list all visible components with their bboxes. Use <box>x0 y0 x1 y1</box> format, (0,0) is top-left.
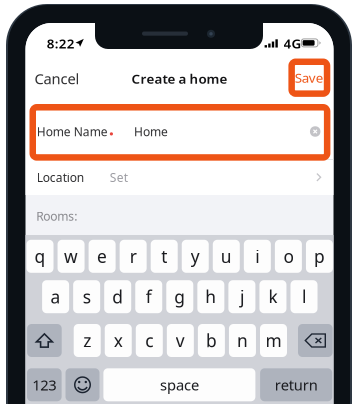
staticText: k <box>268 285 277 308</box>
staticText: j <box>240 285 244 308</box>
button[interactable]: Delete <box>298 324 333 357</box>
staticText: x <box>114 329 123 352</box>
staticText: a <box>51 285 61 308</box>
button[interactable]: Shift <box>27 324 62 357</box>
staticText: o <box>283 245 293 268</box>
staticText: q <box>34 245 45 268</box>
button[interactable]: a <box>42 280 69 313</box>
staticText: y <box>191 245 200 268</box>
button[interactable]: o <box>275 240 302 273</box>
staticText: return <box>275 375 318 395</box>
button[interactable]: p <box>306 240 333 273</box>
staticText: l <box>302 285 306 308</box>
button[interactable]: y <box>182 240 209 273</box>
button[interactable]: b <box>198 324 225 357</box>
button[interactable]: v <box>167 324 194 357</box>
button[interactable]: q <box>26 240 53 273</box>
staticText: u <box>221 245 232 268</box>
staticText: Cancel <box>34 69 79 88</box>
button[interactable]: c <box>136 324 163 357</box>
staticText: n <box>237 329 248 352</box>
staticText: m <box>265 329 281 352</box>
button[interactable]: k <box>259 280 286 313</box>
staticText: h <box>205 285 216 308</box>
button[interactable]: Save <box>288 58 330 97</box>
staticText: 8:22 <box>47 34 75 52</box>
staticText: i <box>255 245 259 268</box>
button[interactable]: l <box>290 280 317 313</box>
staticText: c <box>145 329 153 352</box>
button[interactable]: s <box>73 280 100 313</box>
staticText: Location <box>37 169 84 185</box>
button[interactable]: e <box>89 240 116 273</box>
button[interactable]: g <box>166 280 193 313</box>
staticText: Rooms: <box>36 208 77 224</box>
staticText: Set <box>110 169 128 185</box>
button[interactable]: z <box>74 324 101 357</box>
button[interactable]: space <box>103 368 255 401</box>
button[interactable]: t <box>151 240 178 273</box>
staticText: b <box>206 329 217 352</box>
staticText: Home Name <box>37 123 108 139</box>
button[interactable]: r <box>120 240 147 273</box>
button[interactable]: m <box>260 324 287 357</box>
button[interactable]: w <box>57 240 84 273</box>
staticText: w <box>64 245 78 268</box>
staticText: e <box>97 245 107 268</box>
button[interactable]: h <box>197 280 224 313</box>
button[interactable]: Location <box>25 160 333 195</box>
staticText: g <box>174 285 185 308</box>
button[interactable]: Cancel <box>30 61 83 95</box>
button[interactable]: Clear text <box>308 124 322 138</box>
button[interactable]: 123 <box>27 368 62 401</box>
staticText: Create a home <box>131 70 227 87</box>
staticText: space <box>160 375 199 395</box>
staticText: 123 <box>32 375 56 395</box>
button[interactable]: j <box>228 280 255 313</box>
button[interactable]: n <box>229 324 256 357</box>
staticText: v <box>176 329 185 352</box>
staticText: 4G <box>284 34 302 52</box>
button[interactable]: f <box>135 280 162 313</box>
button[interactable]: x <box>105 324 132 357</box>
button[interactable]: Emoji <box>65 368 99 401</box>
button[interactable]: return <box>260 368 332 401</box>
staticText: t <box>161 245 167 268</box>
staticText: f <box>146 285 152 308</box>
button[interactable]: u <box>213 240 240 273</box>
staticText: z <box>83 329 91 352</box>
staticText: s <box>83 285 91 308</box>
staticText: Home <box>134 123 168 139</box>
staticText: r <box>130 245 137 268</box>
staticText: Save <box>295 69 324 86</box>
button[interactable]: i <box>244 240 271 273</box>
staticText: d <box>112 285 123 308</box>
button[interactable]: Home Name <box>25 104 333 159</box>
staticText: p <box>314 245 325 268</box>
button[interactable]: d <box>104 280 131 313</box>
